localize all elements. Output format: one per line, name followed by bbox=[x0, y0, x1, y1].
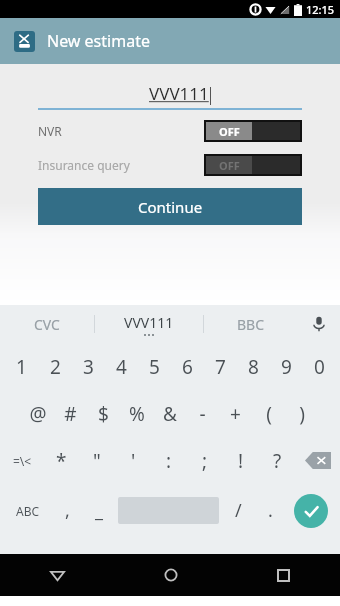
button[interactable]: 9 bbox=[270, 343, 303, 390]
button[interactable]: Back bbox=[0, 554, 114, 596]
button[interactable]: 7 bbox=[204, 343, 237, 390]
button[interactable]: , bbox=[51, 484, 83, 537]
staticText: . bbox=[268, 498, 273, 523]
staticText: # bbox=[64, 401, 77, 427]
staticText: 12:15 bbox=[306, 2, 335, 17]
button[interactable]: ' bbox=[115, 437, 151, 484]
button[interactable]: - bbox=[186, 390, 219, 437]
staticText: - bbox=[199, 401, 206, 427]
button[interactable]: @ bbox=[22, 390, 54, 437]
button[interactable]: Voice input bbox=[298, 305, 340, 343]
button[interactable]: 5 bbox=[138, 343, 171, 390]
staticText: / bbox=[235, 498, 242, 523]
staticText: _ bbox=[95, 498, 103, 523]
staticText: $ bbox=[98, 401, 109, 427]
staticText: 3 bbox=[83, 354, 94, 380]
button[interactable]: Home bbox=[114, 554, 227, 596]
staticText: Continue bbox=[138, 197, 203, 217]
button[interactable]: VVV111 bbox=[38, 80, 302, 110]
staticText: OFF bbox=[219, 124, 240, 139]
staticText: * bbox=[56, 448, 67, 474]
staticText: 9 bbox=[281, 354, 292, 380]
staticText: BBC bbox=[237, 315, 265, 334]
button[interactable]: 3 bbox=[72, 343, 105, 390]
staticText: 1 bbox=[16, 354, 27, 380]
button[interactable]: ; bbox=[187, 437, 223, 484]
button[interactable]: Backspace bbox=[295, 437, 340, 484]
staticText: 5 bbox=[149, 354, 160, 380]
button[interactable]: : bbox=[151, 437, 187, 484]
button[interactable]: =\< bbox=[0, 437, 44, 484]
button[interactable]: VVV111 bbox=[95, 305, 203, 343]
button[interactable]: + bbox=[219, 390, 252, 437]
staticText: VVV111 bbox=[149, 82, 209, 105]
button[interactable]: Insurance query toggle, off bbox=[206, 156, 300, 174]
button[interactable]: 8 bbox=[237, 343, 270, 390]
button[interactable]: ! bbox=[223, 437, 259, 484]
button[interactable]: 6 bbox=[171, 343, 204, 390]
staticText: ( bbox=[266, 401, 272, 427]
staticText: Insurance query bbox=[38, 157, 130, 173]
button[interactable]: % bbox=[120, 390, 153, 437]
staticText: & bbox=[163, 401, 177, 427]
button[interactable]: . bbox=[254, 484, 286, 537]
button[interactable]: ( bbox=[252, 390, 285, 437]
staticText: New estimate bbox=[47, 30, 150, 52]
staticText: 6 bbox=[182, 354, 193, 380]
staticText: NVR bbox=[38, 123, 62, 139]
staticText: ? bbox=[273, 448, 282, 474]
staticText: 8 bbox=[248, 354, 259, 380]
button[interactable]: App logo bbox=[14, 31, 35, 52]
button[interactable]: NVR toggle, off bbox=[206, 122, 300, 140]
staticText: @ bbox=[29, 401, 47, 427]
staticText: VVV111 bbox=[124, 313, 174, 332]
button[interactable]: & bbox=[153, 390, 186, 437]
button[interactable]: 4 bbox=[105, 343, 138, 390]
button[interactable]: / bbox=[222, 484, 254, 537]
button[interactable]: " bbox=[79, 437, 115, 484]
staticText: : bbox=[166, 448, 172, 474]
button[interactable]: _ bbox=[83, 484, 115, 537]
button[interactable]: * bbox=[44, 437, 79, 484]
button[interactable]: # bbox=[54, 390, 87, 437]
staticText: ; bbox=[202, 448, 208, 474]
staticText: CVC bbox=[34, 315, 60, 334]
staticText: 7 bbox=[215, 354, 226, 380]
button[interactable]: CVC bbox=[0, 305, 94, 343]
button[interactable]: BBC bbox=[204, 305, 298, 343]
button[interactable]: ABC bbox=[4, 484, 51, 537]
staticText: ! bbox=[238, 448, 244, 474]
button[interactable]: 1 bbox=[4, 343, 38, 390]
staticText: OFF bbox=[219, 158, 240, 173]
button[interactable]: Recent apps bbox=[227, 554, 340, 596]
button[interactable]: ) bbox=[285, 390, 318, 437]
staticText: 2 bbox=[50, 354, 61, 380]
staticText: ' bbox=[131, 448, 136, 474]
staticText: , bbox=[65, 498, 70, 523]
staticText: + bbox=[230, 401, 241, 427]
button[interactable]: ? bbox=[259, 437, 295, 484]
staticText: " bbox=[93, 448, 101, 474]
staticText: 0 bbox=[314, 354, 325, 380]
staticText: ) bbox=[299, 401, 305, 427]
staticText: % bbox=[129, 401, 145, 427]
staticText: 4 bbox=[116, 354, 127, 380]
button[interactable]: 0 bbox=[303, 343, 336, 390]
button[interactable]: Enter bbox=[286, 484, 336, 537]
button[interactable]: Continue bbox=[38, 188, 302, 225]
button[interactable]: 2 bbox=[38, 343, 72, 390]
button[interactable]: $ bbox=[87, 390, 120, 437]
staticText: =\< bbox=[13, 453, 32, 469]
staticText: ABC bbox=[16, 503, 40, 519]
